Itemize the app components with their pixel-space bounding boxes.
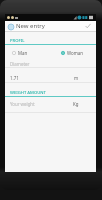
staticText: Your weight [10, 101, 35, 107]
button[interactable]: Man [5, 50, 50, 56]
staticText: Kg [73, 101, 79, 107]
button[interactable]: App icon [7, 23, 14, 30]
staticText: WEIGHT AMOUNT [10, 90, 46, 96]
staticText: 1.71 [10, 75, 19, 81]
staticText: New entry [16, 22, 45, 30]
staticText: m [74, 75, 79, 81]
staticText: PROFIL [10, 38, 25, 44]
button[interactable]: Save [83, 21, 93, 31]
staticText: Woman [67, 50, 83, 56]
button[interactable]: Woman [50, 50, 96, 56]
staticText: Diameter [10, 61, 30, 67]
staticText: Man [18, 50, 28, 56]
